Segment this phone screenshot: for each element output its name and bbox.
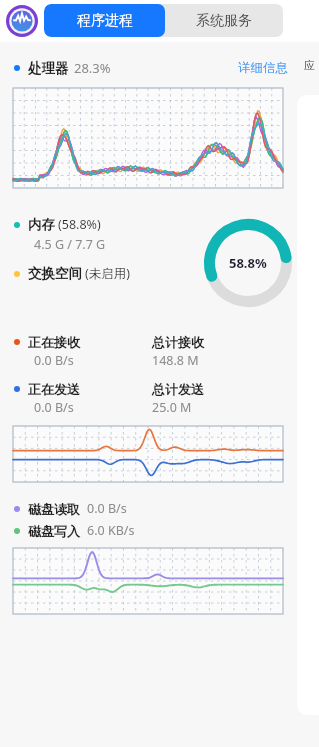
other: CPU monitor app icon <box>6 5 38 37</box>
staticText: 程序进程 <box>77 12 133 30</box>
staticText: 0.0 B/s <box>34 352 74 369</box>
button[interactable]: 磁盘写入 <box>14 522 135 539</box>
staticText: 25.0 M <box>152 399 192 416</box>
staticText: 58.8% <box>229 254 267 272</box>
staticText: 148.8 M <box>152 352 199 369</box>
staticText: 正在接收 <box>28 334 80 350</box>
staticText: 总计接收 <box>152 334 204 350</box>
staticText: 详细信息 <box>238 60 288 76</box>
staticText: 系统服务 <box>196 12 252 30</box>
staticText: 应 <box>304 58 315 72</box>
staticText: 6.0 KB/s <box>87 522 135 539</box>
staticText: (未启用) <box>85 265 131 282</box>
button[interactable]: 交换空间 <box>14 265 131 282</box>
staticText: 0.0 B/s <box>87 500 127 517</box>
staticText: 内存 <box>28 216 55 233</box>
button[interactable]: 详细信息 <box>238 58 288 78</box>
button[interactable]: 处理器 <box>14 58 111 78</box>
staticText: 正在发送 <box>28 381 80 397</box>
button[interactable]: 系统服务 <box>165 4 283 37</box>
staticText: 28.3% <box>74 59 111 77</box>
staticText: 磁盘读取 <box>28 501 80 517</box>
staticText: 总计发送 <box>152 381 204 397</box>
staticText: 处理器 <box>28 60 69 77</box>
staticText: (58.8%) <box>58 216 101 233</box>
button[interactable]: 正在发送 <box>0 381 319 417</box>
button[interactable]: 正在接收 <box>0 334 319 370</box>
button[interactable]: 内存 <box>14 216 101 233</box>
staticText: 磁盘写入 <box>28 523 80 539</box>
staticText: 4.5 G / 7.7 G <box>34 236 106 253</box>
staticText: 0.0 B/s <box>34 399 74 416</box>
staticText: 交换空间 <box>28 265 82 282</box>
button[interactable]: 磁盘读取 <box>14 500 127 517</box>
button[interactable]: 程序进程 <box>44 4 165 37</box>
